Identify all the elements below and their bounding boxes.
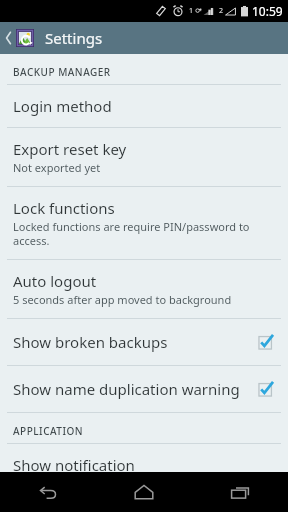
button[interactable]: Navigate up [0, 29, 36, 47]
button[interactable]: Back [0, 472, 96, 512]
button[interactable]: Export reset key [0, 128, 288, 186]
button[interactable]: Show broken backups [0, 319, 288, 365]
staticText: Locked functions are require PIN/passwor… [13, 219, 275, 248]
staticText: Settings [45, 28, 103, 48]
button[interactable]: Show name duplication warning [0, 366, 288, 412]
staticText: 1 [189, 6, 194, 16]
staticText: 10:59 [252, 3, 283, 19]
staticText: APPLICATION [13, 424, 84, 438]
button[interactable]: Auto logout [0, 260, 288, 318]
button[interactable]: Show notification [0, 444, 288, 472]
button[interactable]: Recent apps [192, 472, 288, 512]
staticText: Show broken backups [13, 332, 258, 352]
staticText: Auto logout [13, 271, 97, 291]
staticText: BACKUP MANAGER [13, 65, 111, 79]
button[interactable]: Home [96, 472, 192, 512]
staticText: 5 seconds after app moved to background [13, 292, 232, 307]
staticText: Not exported yet [13, 160, 101, 175]
button[interactable]: Login method [0, 85, 288, 127]
staticText: Login method [13, 96, 112, 116]
staticText: 2 [219, 6, 224, 16]
staticText: Show notification [13, 455, 135, 472]
staticText: Show name duplication warning [13, 379, 258, 399]
staticText: Export reset key [13, 139, 127, 159]
button[interactable]: Lock functions [0, 187, 288, 259]
staticText: Lock functions [13, 198, 115, 218]
